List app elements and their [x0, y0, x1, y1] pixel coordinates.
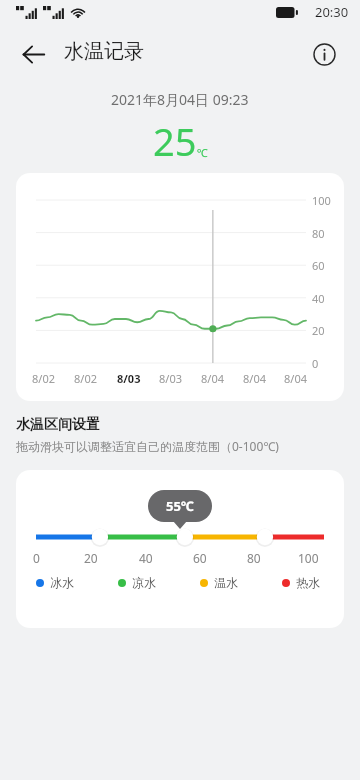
staticText: 凉水 — [132, 575, 156, 590]
staticText: 60 — [312, 258, 325, 273]
staticText: 80 — [247, 550, 261, 566]
button[interactable]: 100 — [16, 173, 344, 401]
button[interactable]: 热水 — [282, 575, 320, 590]
staticText: 8/03 — [117, 371, 141, 386]
staticText: 水温记录 — [64, 39, 144, 64]
staticText: 80 — [312, 226, 325, 241]
staticText: 20 — [312, 323, 325, 338]
staticText: 热水 — [296, 575, 320, 590]
staticText: 40 — [139, 550, 153, 566]
staticText: 0 — [312, 356, 319, 371]
staticText: 25 — [153, 115, 197, 167]
staticText: 20 — [84, 550, 98, 566]
staticText: 100 — [298, 550, 319, 566]
button[interactable]: 凉水 — [118, 575, 156, 590]
staticText: 8/02 — [74, 371, 97, 386]
staticText: 温水 — [214, 575, 238, 590]
staticText: 8/04 — [243, 371, 266, 386]
staticText: 60 — [193, 550, 207, 566]
button[interactable]: 温水 — [200, 575, 238, 590]
staticText: 8/03 — [159, 371, 182, 386]
staticText: 8/02 — [32, 371, 55, 386]
staticText: 拖动滑块可以调整适宜自己的温度范围（0-100℃) — [16, 438, 279, 454]
staticText: 冰水 — [50, 575, 74, 590]
staticText: 8/04 — [201, 371, 224, 386]
staticText: ℃ — [197, 145, 208, 160]
button[interactable]: Back — [10, 31, 56, 77]
staticText: 100 — [312, 193, 331, 208]
staticText: 0 — [33, 550, 40, 566]
button[interactable]: Info — [301, 31, 347, 77]
staticText: 水温区间设置 — [16, 416, 100, 434]
staticText: 20:30 — [315, 3, 349, 21]
button[interactable]: Temperature range slider — [26, 526, 334, 548]
staticText: 55℃ — [166, 497, 194, 515]
staticText: 8/04 — [284, 371, 307, 386]
staticText: 2021年8月04日 09:23 — [111, 90, 249, 109]
staticText: 40 — [312, 291, 325, 306]
button[interactable]: 冰水 — [36, 575, 74, 590]
